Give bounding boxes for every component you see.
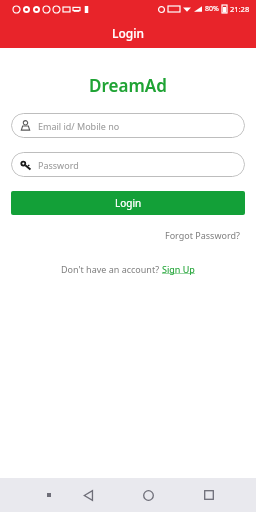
button[interactable]: Forgot Password?: [161, 225, 244, 245]
staticText: Sign Up: [162, 263, 195, 275]
staticText: Forgot Password?: [165, 229, 240, 241]
button[interactable]: Back: [75, 482, 101, 508]
staticText: Password: [38, 159, 79, 171]
button[interactable]: Menu: [40, 486, 58, 504]
staticText: 21:28: [230, 4, 250, 14]
button[interactable]: Sign Up: [162, 263, 195, 275]
staticText: Don't have an account?: [61, 263, 162, 275]
staticText: 80%: [205, 4, 219, 14]
button[interactable]: Password: [11, 152, 245, 177]
button[interactable]: Home: [135, 482, 161, 508]
button[interactable]: Email id/ Mobile no: [11, 113, 245, 138]
staticText: Email id/ Mobile no: [38, 120, 120, 132]
staticText: DreamAd: [0, 74, 256, 97]
staticText: Login: [115, 196, 142, 210]
button[interactable]: Login: [11, 191, 245, 215]
button[interactable]: Recents: [196, 482, 222, 508]
staticText: Login: [112, 25, 144, 41]
